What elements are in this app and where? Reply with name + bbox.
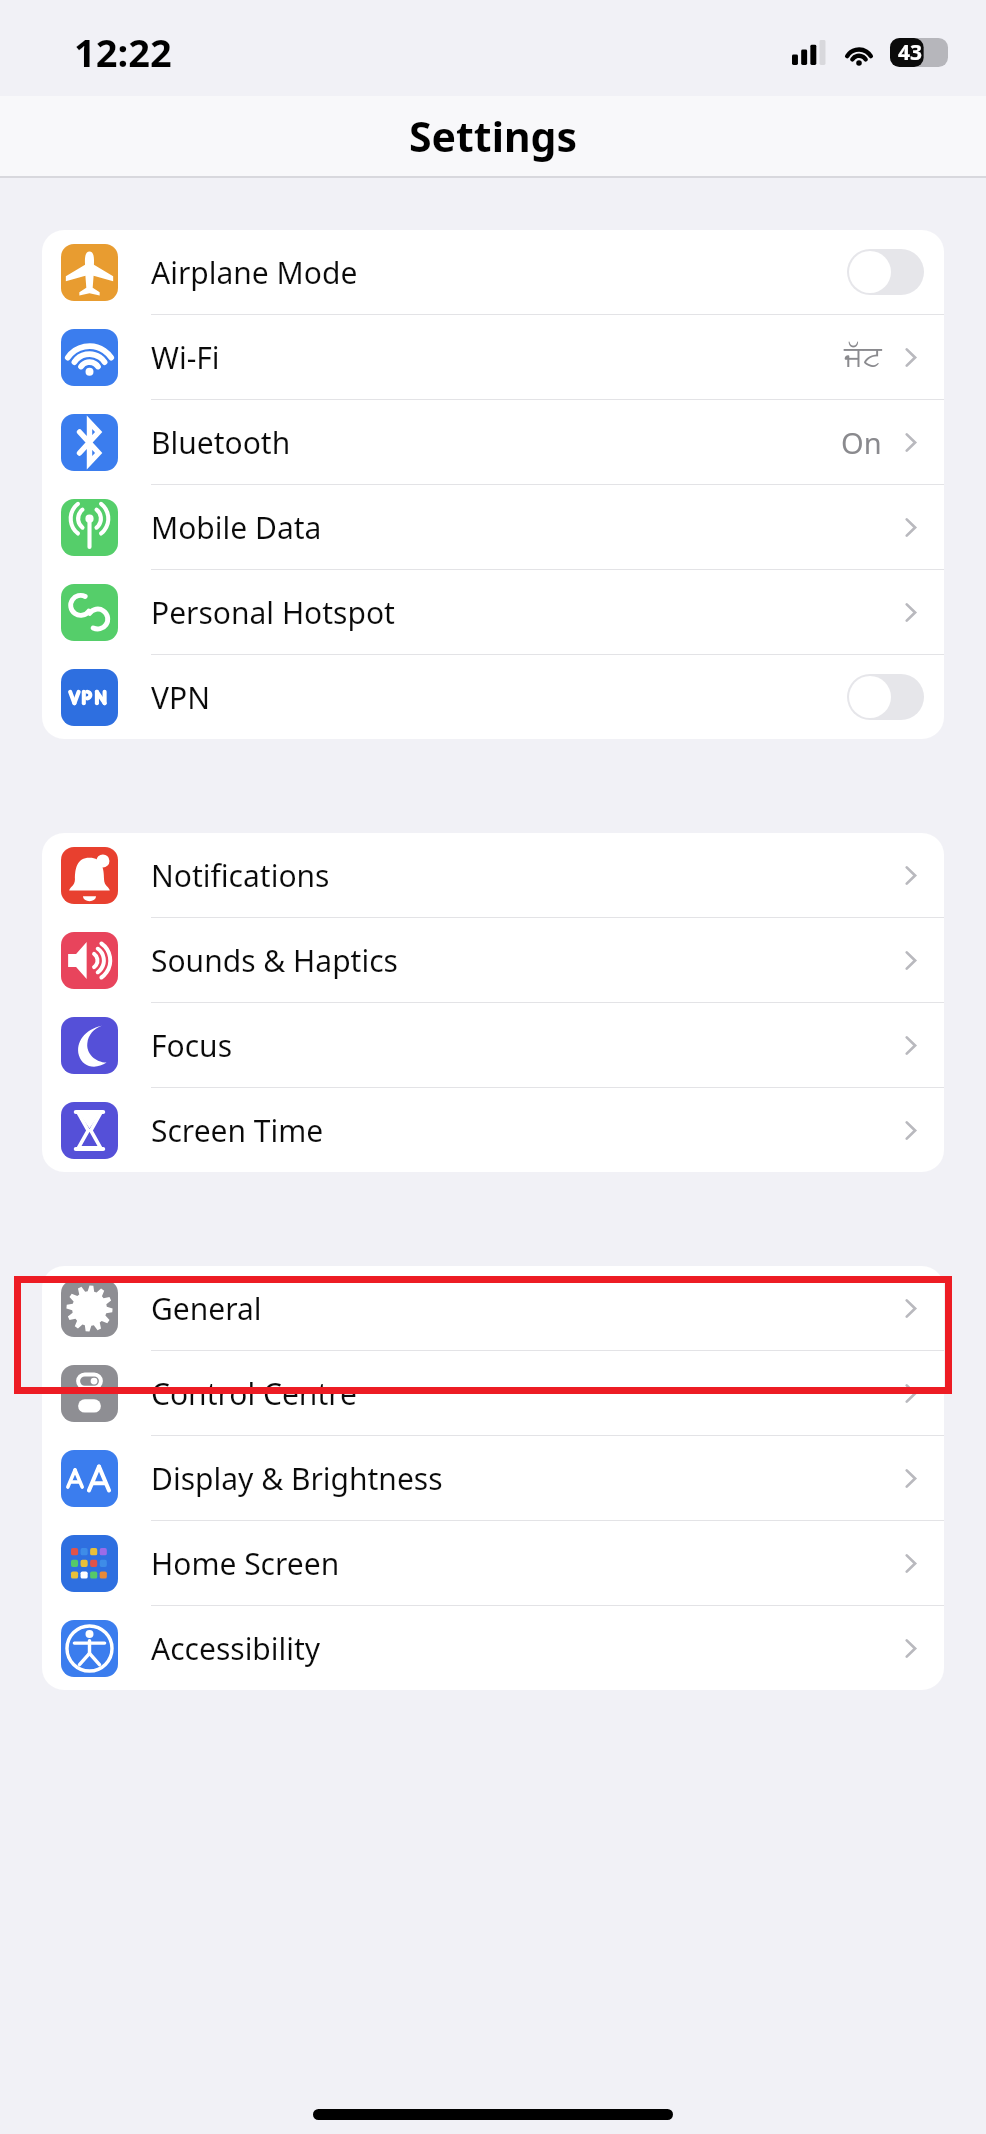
button[interactable]: VPN (42, 655, 944, 739)
button[interactable]: Control Centre (42, 1351, 944, 1436)
staticText: Notifications (151, 855, 330, 896)
button[interactable]: Home Screen (42, 1521, 944, 1606)
staticText: Display & Brightness (151, 1458, 443, 1499)
button[interactable]: Mobile Data (42, 485, 944, 570)
staticText: Airplane Mode (151, 252, 358, 293)
staticText: On (841, 423, 882, 462)
button[interactable]: Wi-Fi (42, 315, 944, 400)
staticText: Sounds & Haptics (151, 940, 398, 981)
staticText: Focus (151, 1025, 233, 1066)
staticText: Control Centre (151, 1373, 357, 1414)
staticText: Mobile Data (151, 507, 322, 548)
other: Home indicator (313, 2109, 673, 2120)
button[interactable]: Accessibility (42, 1606, 944, 1690)
staticText: VPN (151, 677, 210, 718)
button[interactable]: Airplane Mode (42, 230, 944, 315)
staticText: Accessibility (151, 1628, 321, 1669)
staticText: ਜੱਟ (844, 343, 882, 372)
button[interactable]: Display & Brightness (42, 1436, 944, 1521)
staticText: Bluetooth (151, 422, 291, 463)
staticText: 43 (898, 38, 923, 67)
button[interactable]: General (42, 1266, 944, 1351)
button[interactable]: Notifications (42, 833, 944, 918)
staticText: Settings (409, 108, 578, 164)
button[interactable]: Bluetooth (42, 400, 944, 485)
button[interactable]: Screen Time (42, 1088, 944, 1172)
staticText: Screen Time (151, 1110, 324, 1151)
button[interactable]: Personal Hotspot (42, 570, 944, 655)
staticText: General (151, 1288, 262, 1329)
staticText: 12:22 (74, 26, 172, 78)
button[interactable]: Focus (42, 1003, 944, 1088)
staticText: Personal Hotspot (151, 592, 395, 633)
button[interactable]: Sounds & Haptics (42, 918, 944, 1003)
staticText: Wi-Fi (151, 337, 220, 378)
staticText: Home Screen (151, 1543, 340, 1584)
